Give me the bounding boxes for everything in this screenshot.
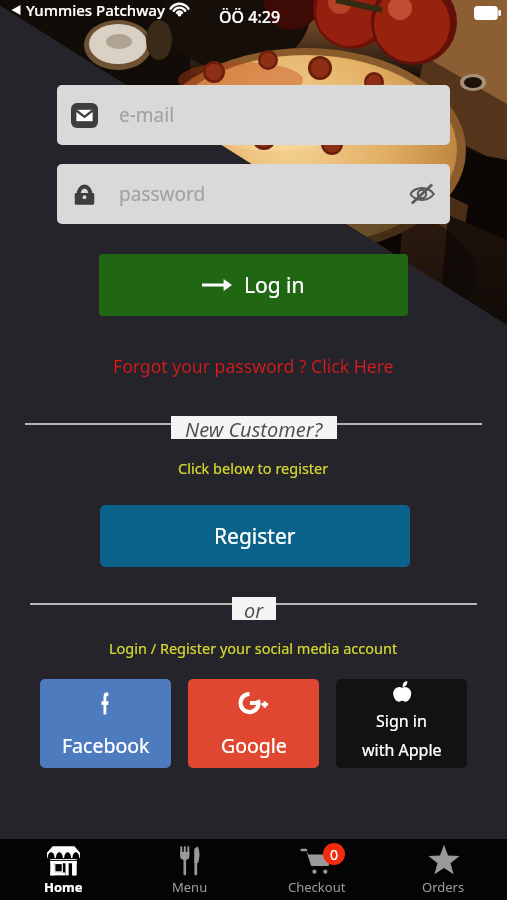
button[interactable]: Register [100,505,410,567]
staticText: password [119,181,206,207]
staticText: Google [221,732,287,759]
button[interactable]: Home [0,839,126,900]
staticText: Register [214,522,296,551]
staticText: Facebook [62,732,150,759]
button[interactable]: Show password [408,180,436,208]
button[interactable]: Facebook [40,679,171,768]
staticText: or [244,597,264,620]
staticText: e-mail [119,102,175,128]
staticText: Forgot your password ? Click Here [113,354,394,378]
button[interactable]: Log in [99,254,408,316]
staticText: Orders [422,878,465,896]
staticText: Sign in [376,710,427,732]
staticText: 0 [330,845,339,864]
staticText: Home [44,878,83,896]
staticText: Login / Register your social media accou… [109,638,398,658]
button[interactable]: password [57,164,450,224]
staticText: ÖÖ 4:29 [219,6,281,28]
staticText: Checkout [288,878,346,896]
staticText: Click below to register [178,458,329,478]
button[interactable]: Orders [380,839,507,900]
button[interactable]: Sign in [336,679,467,768]
button[interactable]: Google [188,679,319,768]
button[interactable]: 0 [253,839,380,900]
button[interactable]: Forgot your password ? Click Here [105,352,402,380]
button[interactable]: e-mail [57,85,450,145]
staticText: with Apple [362,739,442,761]
staticText: Menu [172,878,208,896]
button[interactable]: Menu [126,839,253,900]
staticText: Yummies Patchway [26,0,165,20]
staticText: Log in [244,271,305,300]
staticText: New Customer? [185,416,323,439]
